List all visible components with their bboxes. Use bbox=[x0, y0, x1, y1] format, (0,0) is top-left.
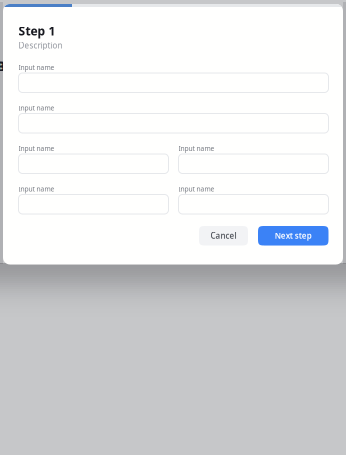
staticText: Next step bbox=[275, 230, 312, 241]
staticText: Description bbox=[18, 40, 62, 51]
staticText: Input name bbox=[18, 184, 54, 193]
staticText: Input name bbox=[18, 103, 54, 112]
staticText: Cancel bbox=[210, 230, 236, 241]
staticText: Step 1 bbox=[18, 23, 55, 39]
staticText: Input name bbox=[18, 63, 54, 72]
button[interactable]: Next step bbox=[258, 226, 328, 245]
staticText: Input name bbox=[178, 144, 214, 153]
button[interactable]: Cancel bbox=[199, 226, 248, 245]
staticText: Input name bbox=[18, 144, 54, 153]
staticText: B bbox=[0, 56, 6, 75]
staticText: Input name bbox=[178, 184, 214, 193]
